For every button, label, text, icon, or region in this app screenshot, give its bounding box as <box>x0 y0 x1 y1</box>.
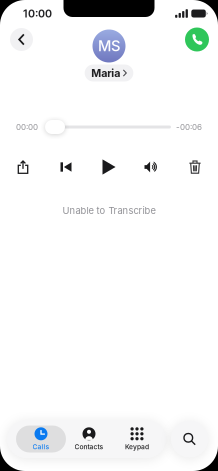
staticText: -00:06 <box>176 122 202 132</box>
staticText: MS <box>98 37 120 55</box>
staticText: Calls <box>32 443 49 451</box>
staticText: Contacts <box>74 443 103 451</box>
staticText: Unable to Transcribe <box>62 205 155 216</box>
button[interactable]: Speaker <box>130 159 173 175</box>
button[interactable]: Play <box>87 159 130 175</box>
staticText: 00:00 <box>16 122 38 132</box>
button[interactable]: Keypad <box>113 420 161 458</box>
button[interactable]: Contacts <box>65 420 113 458</box>
button[interactable]: Share <box>1 159 44 175</box>
button[interactable]: Delete <box>173 159 216 175</box>
button[interactable]: Back <box>10 28 33 51</box>
button[interactable]: Maria <box>85 64 133 81</box>
button[interactable]: Search <box>171 420 208 457</box>
button[interactable]: Call <box>185 27 209 51</box>
button[interactable]: Calls <box>17 420 65 458</box>
staticText: Maria <box>91 67 120 79</box>
staticText: Keypad <box>125 443 149 451</box>
button[interactable]: Rewind <box>44 159 87 175</box>
staticText: 10:00 <box>23 7 52 20</box>
